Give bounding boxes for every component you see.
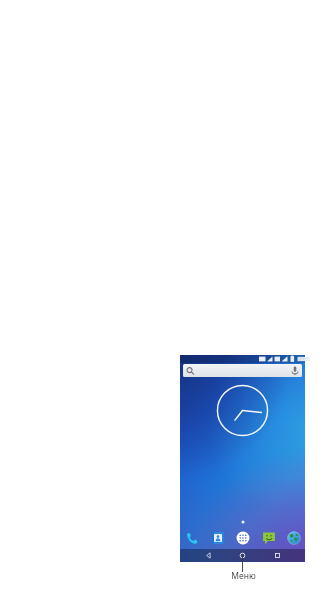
button[interactable]: Recents [271,549,284,562]
button[interactable]: Google search [183,364,302,377]
button[interactable]: Phone [183,529,200,546]
button[interactable]: Clock widget [216,384,269,437]
button[interactable]: Browser [285,529,302,546]
button[interactable]: Back [202,549,215,562]
button[interactable]: Home [236,549,249,562]
button[interactable]: Messaging [260,529,277,546]
button[interactable]: Apps [234,529,251,546]
staticText: Меню [231,570,256,582]
button[interactable]: Contacts [209,529,226,546]
